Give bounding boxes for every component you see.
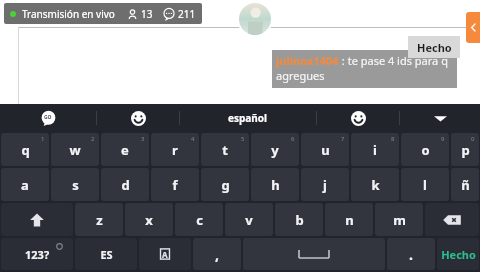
button[interactable]: n (325, 203, 373, 236)
staticText: h (271, 176, 280, 194)
staticText: 6 (291, 135, 295, 143)
staticText: Hecho (441, 247, 476, 262)
staticText: w (69, 141, 81, 159)
staticText: agregues (276, 68, 325, 83)
staticText: z (96, 211, 103, 229)
button[interactable]: m (375, 203, 423, 236)
staticText: 1 (41, 135, 45, 143)
staticText: j (323, 176, 327, 194)
staticText: v (245, 211, 253, 229)
button[interactable]: g (201, 168, 249, 201)
staticText: 123? (25, 247, 50, 262)
button[interactable]: , (193, 238, 241, 270)
staticText: c (196, 211, 203, 229)
staticText: GO (44, 114, 52, 121)
staticText: l (423, 176, 427, 194)
button[interactable]: español (180, 104, 316, 132)
staticText: r (172, 141, 178, 159)
button[interactable]: x (125, 203, 173, 236)
staticText: q (21, 141, 30, 159)
button[interactable]: GO keyboard (0, 104, 96, 132)
button[interactable]: ES (75, 238, 137, 270)
staticText: a (21, 176, 29, 194)
button[interactable]: s (51, 168, 99, 201)
staticText: ñ (461, 176, 470, 194)
staticText: 5 (241, 135, 245, 143)
staticText: u (321, 141, 330, 159)
staticText: o (421, 141, 430, 159)
staticText: 0 (471, 135, 475, 143)
button[interactable]: l (401, 168, 449, 201)
button[interactable]: Profile avatar (237, 1, 273, 37)
button[interactable]: q (1, 133, 49, 166)
button[interactable]: k (351, 168, 399, 201)
staticText: f (172, 176, 178, 194)
staticText: 8 (391, 135, 395, 143)
button[interactable]: Transmisión en vivo (4, 3, 202, 24)
button[interactable]: Expand panel (466, 12, 480, 43)
staticText: 4 (191, 135, 195, 143)
staticText: i (373, 141, 377, 159)
staticText: 9 (441, 135, 445, 143)
button[interactable]: . (387, 238, 435, 270)
button[interactable]: d (101, 168, 149, 201)
staticText: 3 (141, 135, 145, 143)
button[interactable]: Hecho (437, 238, 479, 270)
button[interactable]: e (101, 133, 149, 166)
staticText: g (221, 176, 230, 194)
staticText: d (121, 176, 130, 194)
staticText: 2 (91, 135, 95, 143)
button[interactable]: z (75, 203, 123, 236)
button[interactable]: y (251, 133, 299, 166)
button[interactable]: Backspace (425, 203, 479, 236)
staticText: e (121, 141, 129, 159)
staticText: Hecho (417, 40, 452, 55)
staticText: k (371, 176, 380, 194)
button[interactable]: t (201, 133, 249, 166)
staticText: julinox1404 (276, 53, 339, 68)
button[interactable]: f (151, 168, 199, 201)
staticText: p (461, 141, 470, 159)
button[interactable]: c (175, 203, 223, 236)
button[interactable]: Collapse toolbar (400, 104, 480, 132)
staticText: t (222, 141, 228, 159)
staticText: Transmisión en vivo (22, 7, 115, 21)
button[interactable]: r (151, 133, 199, 166)
staticText: 211 (178, 7, 196, 21)
staticText: 7 (341, 135, 345, 143)
button[interactable]: b (275, 203, 323, 236)
button[interactable]: Language (139, 238, 191, 270)
button[interactable]: v (225, 203, 273, 236)
button[interactable]: space (243, 238, 385, 270)
staticText: : te pase 4 ids para q (339, 53, 448, 68)
button[interactable]: a (1, 168, 49, 201)
button[interactable]: j (301, 168, 349, 201)
staticText: m (393, 211, 406, 229)
button[interactable]: julinox1404 (272, 50, 457, 88)
button[interactable]: o (401, 133, 449, 166)
button[interactable]: Hecho (408, 36, 460, 58)
button[interactable]: h (251, 168, 299, 201)
button[interactable]: p (451, 133, 479, 166)
button[interactable]: Shift (1, 203, 73, 236)
staticText: s (72, 176, 79, 194)
button[interactable]: i (351, 133, 399, 166)
button[interactable]: Emoji (97, 104, 179, 132)
button[interactable]: ñ (451, 168, 479, 201)
staticText: , (215, 245, 219, 264)
button[interactable]: Stickers (317, 104, 399, 132)
staticText: n (345, 211, 354, 229)
staticText: y (271, 141, 279, 159)
staticText: b (295, 211, 304, 229)
staticText: español (228, 111, 268, 125)
staticText: . (409, 245, 413, 264)
button[interactable]: u (301, 133, 349, 166)
button[interactable]: 123? (1, 238, 73, 270)
staticText: 13 (141, 7, 153, 21)
button[interactable]: w (51, 133, 99, 166)
staticText: ES (100, 247, 113, 262)
staticText: A (162, 249, 168, 260)
staticText: x (145, 211, 153, 229)
